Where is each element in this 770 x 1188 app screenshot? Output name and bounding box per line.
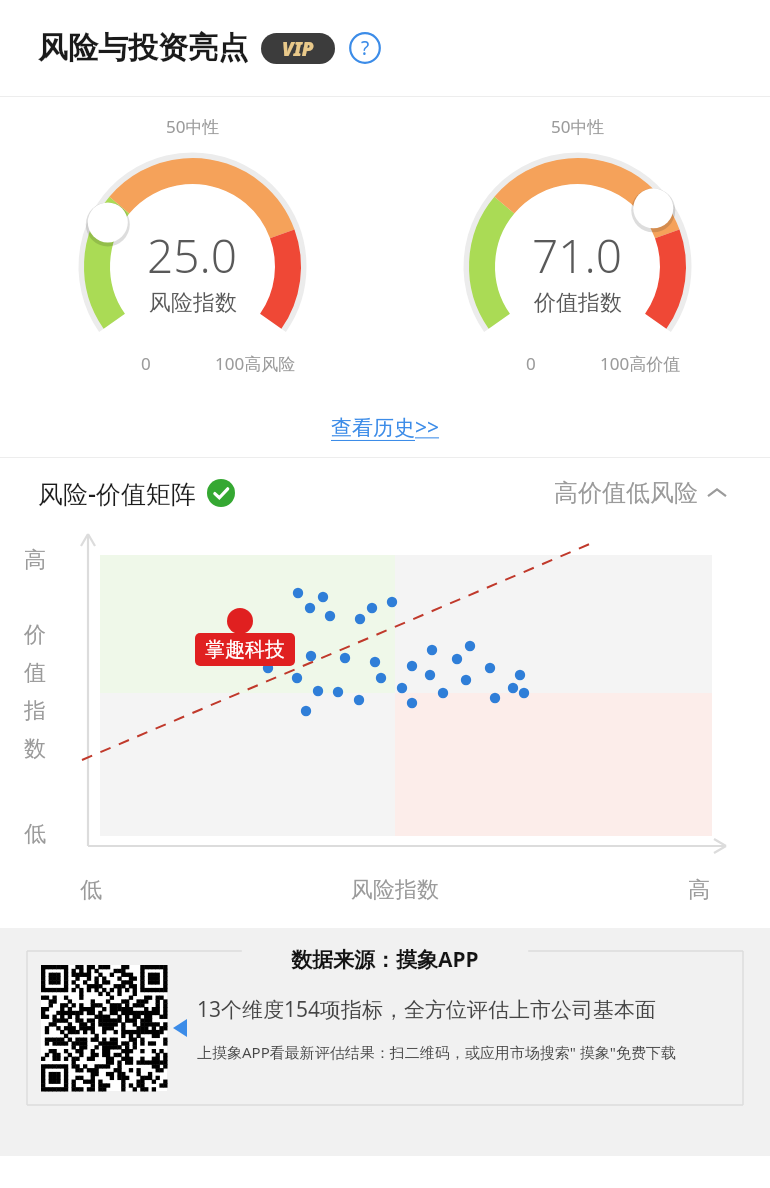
staticText: 100高价值 [600,352,681,375]
staticText: 13个维度154项指标，全方位评估上市公司基本面 [197,995,657,1024]
staticText: 25.0 [147,224,238,287]
staticText: 数 [24,735,46,763]
button[interactable]: 高价值低风险 [548,472,732,514]
staticText: 风险指数 [149,289,237,317]
button[interactable]: 查看历史>> [319,407,452,448]
staticText: 0 [526,352,536,375]
button[interactable]: VIP [261,33,335,64]
staticText: 风险-价值矩阵 [38,476,197,510]
staticText: 查看历史>> [331,413,440,442]
staticText: ? [361,35,370,61]
staticText: 高 [688,876,710,904]
staticText: 掌趣科技 [205,637,285,662]
staticText: 50中性 [551,115,605,138]
staticText: 风险与投资亮点 [38,29,248,67]
staticText: 100高风险 [215,352,296,375]
staticText: 上摸象APP看最新评估结果：扫二维码，或应用市场搜索" 摸象"免费下载 [197,1042,676,1062]
staticText: 低 [24,820,46,848]
staticText: 高价值低风险 [554,478,698,508]
staticText: 低 [80,876,102,904]
staticText: 50中性 [166,115,220,138]
button[interactable]: 掌趣科技 [195,633,295,666]
button[interactable]: 帮助说明 [349,32,381,64]
staticText: 价值指数 [534,289,622,317]
staticText: 风险指数 [351,876,439,904]
staticText: 值 [24,659,46,687]
staticText: 71.0 [532,224,623,287]
staticText: 指 [24,697,46,725]
staticText: 高 [24,546,46,574]
staticText: VIP [282,36,314,62]
staticText: 价 [24,621,46,649]
staticText: 0 [141,352,151,375]
staticText: 数据来源：摸象APP [291,945,479,974]
